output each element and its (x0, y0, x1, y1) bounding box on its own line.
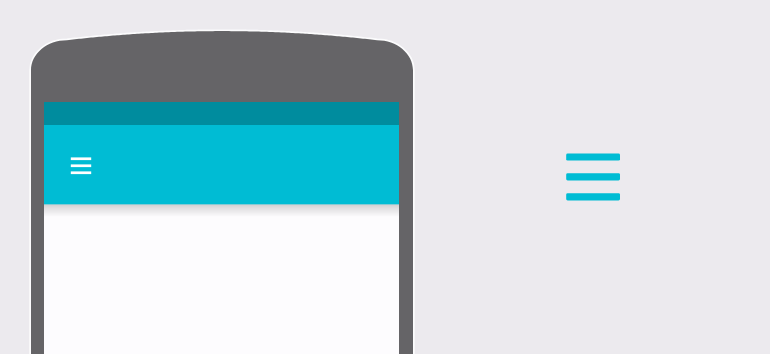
button[interactable]: Open navigation drawer (57, 141, 105, 189)
button[interactable]: Menu (556, 143, 630, 210)
